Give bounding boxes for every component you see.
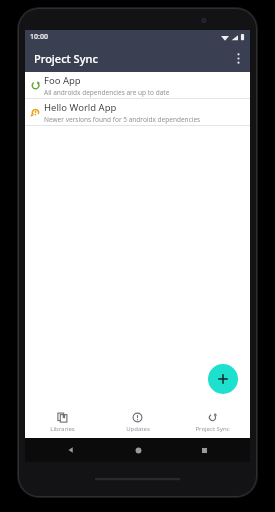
button[interactable]: Updates <box>100 406 175 438</box>
staticText: Updates <box>126 425 150 433</box>
staticText: Project Sync <box>34 51 98 66</box>
staticText: Hello World App <box>44 101 117 114</box>
staticText: Project Sync <box>195 425 230 433</box>
button[interactable]: Foo App <box>25 72 250 98</box>
staticText: Newer versions found for 5 androidx depe… <box>44 115 201 124</box>
button[interactable]: Project Sync <box>175 406 250 438</box>
button[interactable]: Hello World App <box>25 99 250 125</box>
button[interactable]: Home <box>118 438 158 462</box>
button[interactable]: Add <box>208 364 238 394</box>
button[interactable]: More options <box>226 44 250 72</box>
button[interactable]: Libraries <box>25 406 100 438</box>
button[interactable]: Recent apps <box>184 438 224 462</box>
staticText: Foo App <box>44 74 81 87</box>
staticText: 10:00 <box>30 32 48 42</box>
staticText: All androidx dependencies are up to date <box>44 88 170 97</box>
button[interactable]: Back <box>51 438 91 462</box>
staticText: Libraries <box>50 425 75 433</box>
